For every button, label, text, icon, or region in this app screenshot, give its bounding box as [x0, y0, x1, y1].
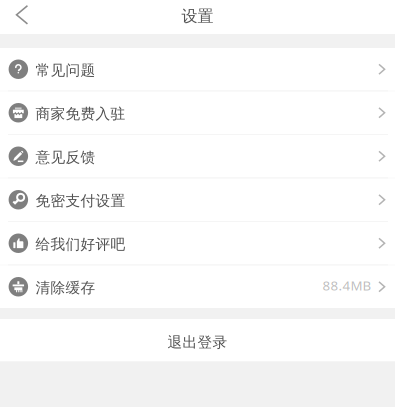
- button[interactable]: 商家免费入驻: [0, 91, 395, 134]
- staticText: 给我们好评吧: [35, 235, 125, 253]
- staticText: 商家免费入驻: [35, 105, 125, 123]
- staticText: 退出登录: [167, 333, 227, 351]
- staticText: 意见反馈: [35, 148, 95, 166]
- staticText: 设置: [181, 6, 213, 26]
- button[interactable]: 清除缓存: [0, 265, 395, 308]
- staticText: 清除缓存: [35, 279, 95, 297]
- staticText: 常见问题: [35, 61, 95, 79]
- button[interactable]: 常见问题: [0, 48, 395, 90]
- staticText: 免密支付设置: [35, 192, 125, 210]
- button[interactable]: 给我们好评吧: [0, 222, 395, 264]
- button[interactable]: Back: [0, 0, 44, 34]
- staticText: 88.4MB: [322, 276, 371, 294]
- button[interactable]: 意见反馈: [0, 135, 395, 177]
- button[interactable]: 退出登录: [0, 319, 395, 361]
- button[interactable]: 免密支付设置: [0, 178, 395, 221]
